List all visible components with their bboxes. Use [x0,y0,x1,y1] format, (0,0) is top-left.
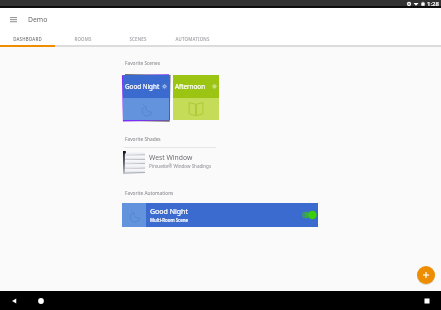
staticText: 1:28 [427,0,439,8]
button[interactable]: Good Night [123,75,169,120]
staticText: Favorite Scenes [125,60,161,67]
button[interactable]: SCENES [110,31,165,46]
staticText: SCENES [129,36,147,42]
staticText: West Window [149,153,193,162]
staticText: Favorite Shades [125,136,161,143]
button[interactable]: Add [417,266,435,284]
staticText: Favorite Automations [125,190,174,197]
button[interactable]: Afternoon [173,75,219,120]
button[interactable]: ROOMS [55,31,110,46]
button[interactable]: Scene options [211,83,218,90]
staticText: ROOMS [74,36,92,42]
staticText: AUTOMATIONS [175,36,210,42]
staticText: Afternoon [175,82,206,91]
button[interactable]: West Window [123,149,317,175]
staticText: Good Night [125,82,160,91]
button[interactable]: Recent apps [422,296,432,306]
button[interactable]: AUTOMATIONS [165,31,220,46]
staticText: Multi-Room Scene [150,217,189,223]
button[interactable]: DASHBOARD [0,31,55,46]
button[interactable]: Home [36,296,46,306]
staticText: Demo [28,15,48,24]
button[interactable]: Toggle Good Night automation [299,203,317,227]
button[interactable]: Open navigation drawer [4,10,22,28]
button[interactable]: Good Night [122,203,318,227]
staticText: Pirouette® Window Shadings [149,163,212,169]
staticText: Good Night [150,207,188,217]
staticText: DASHBOARD [13,36,42,42]
button[interactable]: Scene options [161,83,168,90]
button[interactable]: Back [9,296,19,306]
